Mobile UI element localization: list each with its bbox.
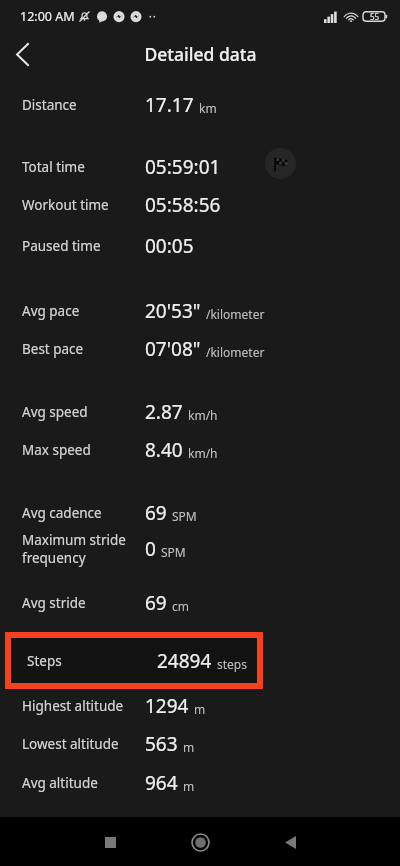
button[interactable]: Avg stride — [0, 585, 400, 621]
staticText: /kilometer — [206, 344, 265, 360]
staticText: 8.40 — [145, 437, 183, 463]
button[interactable]: Workout time — [0, 187, 400, 223]
staticText: Steps — [27, 652, 62, 670]
staticText: frequency — [22, 549, 86, 567]
button[interactable]: Avg cadence — [0, 495, 400, 531]
staticText: Workout time — [22, 196, 109, 214]
staticText: Best pace — [22, 340, 84, 358]
button[interactable]: Distance — [0, 87, 400, 123]
staticText: steps — [217, 656, 247, 672]
staticText: 05:58:56 — [145, 192, 221, 218]
staticText: Lowest altitude — [22, 735, 119, 753]
staticText: Avg pace — [22, 302, 80, 320]
staticText: m — [183, 778, 195, 794]
button[interactable]: Lowest altitude — [0, 726, 400, 762]
button[interactable]: Max speed — [0, 432, 400, 468]
staticText: Paused time — [22, 237, 101, 255]
staticText: km — [199, 100, 217, 116]
staticText: Avg altitude — [22, 774, 98, 792]
staticText: 17.17 — [145, 92, 194, 118]
button[interactable]: Highest altitude — [0, 688, 400, 724]
staticText: km/h — [188, 445, 218, 461]
staticText: 563 — [145, 731, 178, 757]
staticText: Maximum stride — [22, 531, 126, 549]
button[interactable]: Best pace — [0, 331, 400, 367]
staticText: 24894 — [157, 648, 212, 674]
button[interactable]: Paused time — [0, 228, 400, 264]
staticText: 1294 — [145, 693, 189, 719]
button[interactable]: Total time — [0, 149, 400, 185]
staticText: 07'08" — [145, 336, 201, 362]
staticText: Avg cadence — [22, 504, 102, 522]
staticText: 05:59:01 — [145, 154, 221, 180]
staticText: Avg stride — [22, 594, 86, 612]
staticText: 12:00 AM — [20, 8, 75, 25]
staticText: 00:05 — [145, 233, 194, 259]
staticText: 69 — [145, 590, 167, 616]
staticText: cm — [172, 598, 189, 614]
staticText: m — [194, 701, 206, 717]
staticText: 69 — [145, 500, 167, 526]
staticText: 20'53" — [145, 298, 201, 324]
staticText: SPM — [172, 508, 197, 524]
button[interactable]: Avg speed — [0, 394, 400, 430]
staticText: /kilometer — [206, 306, 265, 322]
staticText: SPM — [161, 544, 186, 560]
button[interactable]: Maximum stride — [0, 527, 400, 571]
staticText: m — [183, 739, 195, 755]
staticText: 964 — [145, 770, 178, 796]
button[interactable]: Back — [270, 822, 310, 862]
staticText: 0 — [145, 536, 156, 562]
staticText: Highest altitude — [22, 697, 124, 715]
staticText: Avg speed — [22, 403, 88, 421]
staticText: Max speed — [22, 441, 91, 459]
button[interactable]: Avg altitude — [0, 765, 400, 801]
staticText: km/h — [188, 407, 218, 423]
staticText: Distance — [22, 96, 77, 114]
button[interactable]: Steps — [11, 638, 257, 683]
button[interactable]: Back — [0, 32, 44, 76]
staticText: 55 — [370, 11, 380, 22]
staticText: Detailed data — [144, 42, 257, 66]
button[interactable]: Home — [179, 821, 221, 863]
button[interactable]: Recent apps — [90, 822, 130, 862]
staticText: Total time — [22, 158, 85, 176]
button[interactable]: Avg pace — [0, 293, 400, 329]
staticText: 2.87 — [145, 399, 183, 425]
